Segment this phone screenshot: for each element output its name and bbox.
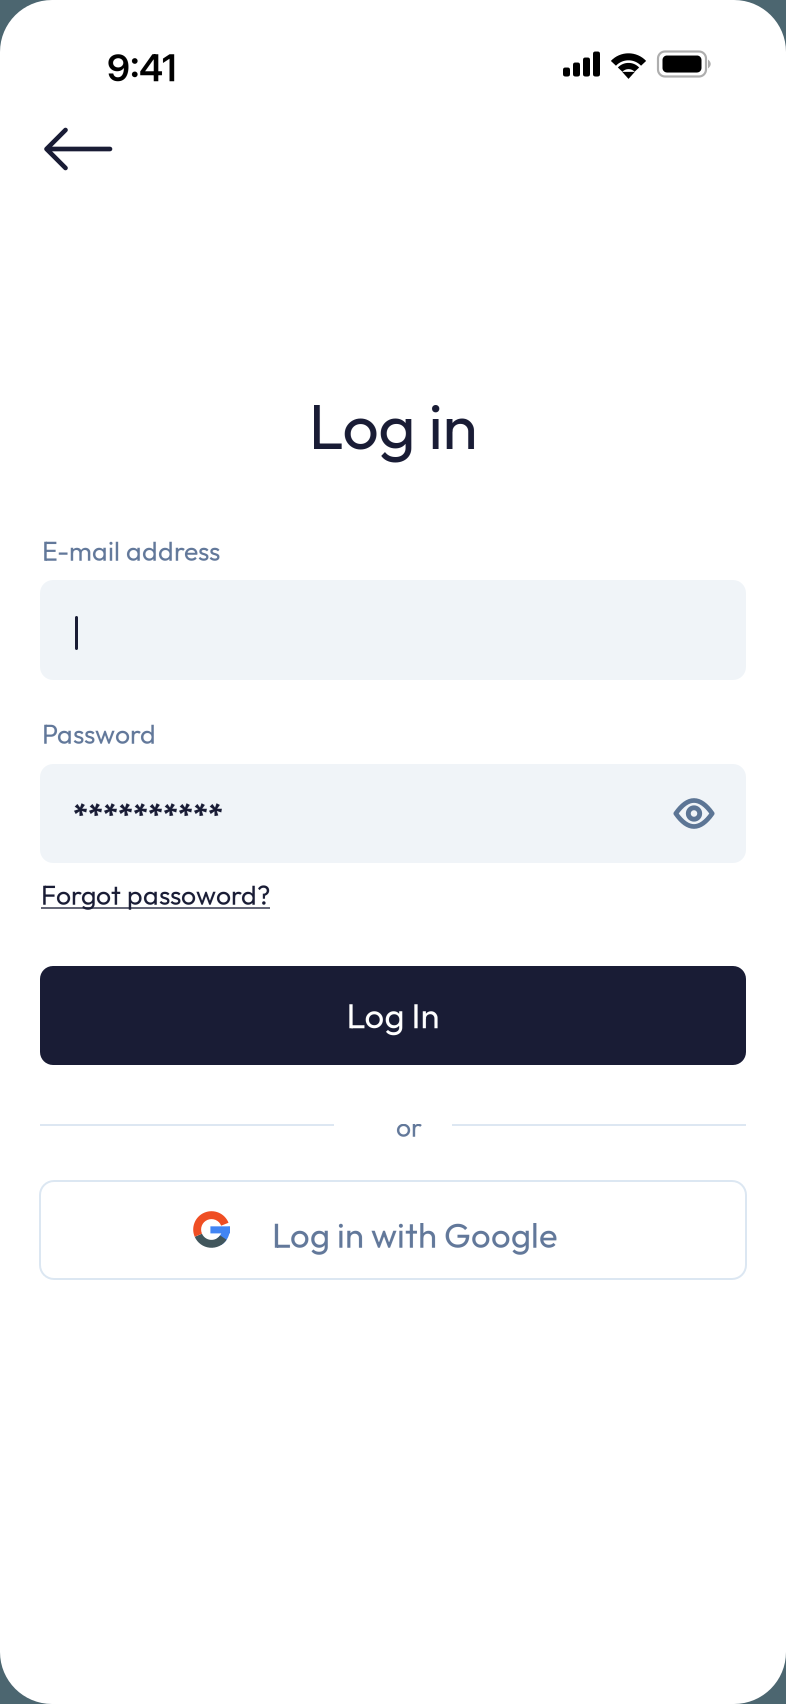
button[interactable]: Show password [663, 786, 725, 840]
staticText: Password [42, 717, 156, 751]
staticText: E-mail address [42, 534, 220, 568]
staticText: or [396, 1110, 422, 1144]
staticText: ********** [73, 795, 223, 834]
staticText: Log In [346, 994, 439, 1037]
staticText: Log in with Google [272, 1213, 558, 1257]
button[interactable]: Log In [40, 966, 746, 1065]
button[interactable]: Back [24, 109, 132, 189]
staticText: Forgot passoword? [41, 878, 270, 912]
staticText: 9:41 [107, 45, 177, 90]
button[interactable]: Log in with Google [40, 1181, 746, 1279]
staticText: Log in [308, 385, 477, 466]
button[interactable]: Forgot passoword? [41, 874, 270, 916]
